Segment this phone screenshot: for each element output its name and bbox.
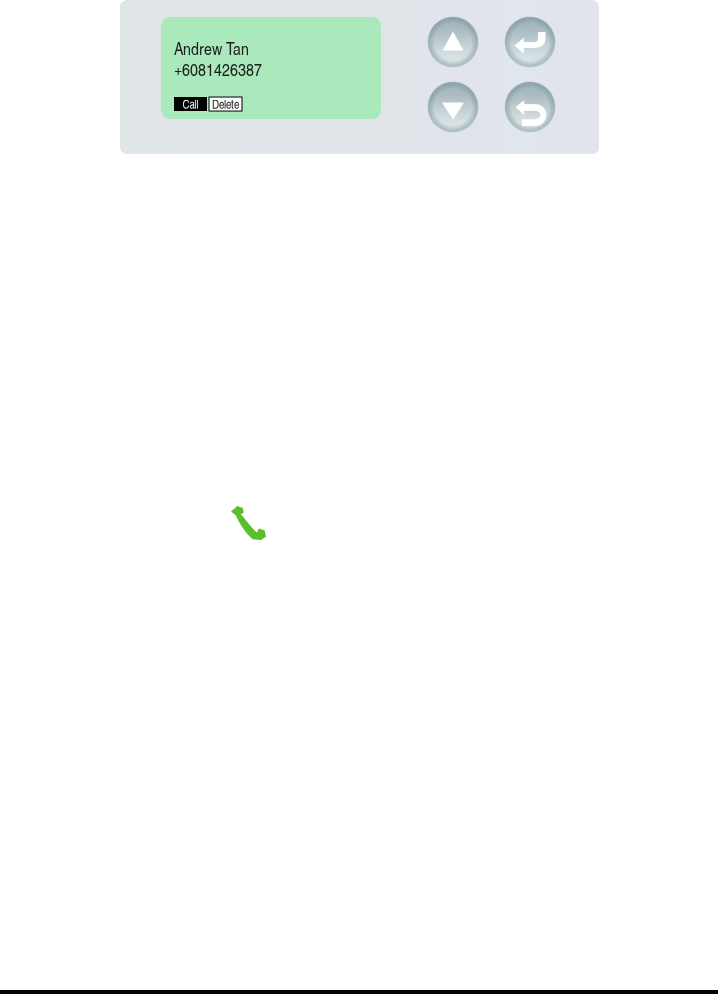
staticText: Call xyxy=(182,96,198,112)
staticText: Andrew Tan xyxy=(174,36,249,60)
button[interactable]: Scroll down xyxy=(428,82,478,132)
button[interactable]: Enter xyxy=(505,17,555,67)
button[interactable]: Back xyxy=(505,82,555,132)
button[interactable]: Delete xyxy=(209,97,242,111)
button[interactable]: Call xyxy=(174,97,207,111)
button[interactable]: Scroll up xyxy=(428,17,478,67)
staticText: Delete xyxy=(212,96,239,112)
button[interactable]: Call xyxy=(231,506,266,540)
staticText: +6081426387 xyxy=(174,57,262,81)
